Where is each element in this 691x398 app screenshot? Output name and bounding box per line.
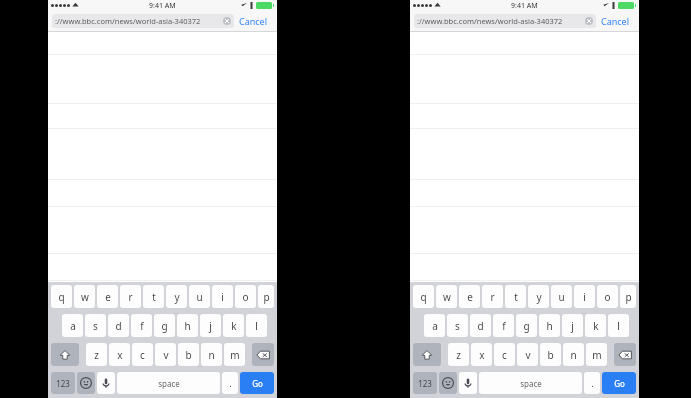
staticText: x (479, 348, 485, 362)
staticText: Go (614, 378, 625, 389)
staticText: 123 (418, 378, 432, 389)
button[interactable]: Clear text (585, 17, 593, 25)
button[interactable]: . (222, 372, 238, 394)
button[interactable]: y (166, 285, 187, 308)
button[interactable]: Emoji (439, 372, 457, 394)
staticText: t (152, 290, 156, 304)
button[interactable]: v (517, 343, 538, 366)
button[interactable]: Backspace (252, 343, 274, 366)
button[interactable]: c (132, 343, 153, 366)
button[interactable]: i (212, 285, 233, 308)
button[interactable]: ://www.bbc.com/news/world-asia-340372 (52, 14, 234, 28)
button[interactable]: f (493, 314, 514, 337)
staticText: ://www.bbc.com/news/world-asia-340372 (55, 16, 223, 26)
staticText: 9:41 AM (149, 1, 176, 11)
staticText: z (94, 348, 99, 362)
button[interactable]: p (258, 285, 274, 308)
button[interactable]: x (109, 343, 130, 366)
button[interactable]: i (574, 285, 595, 308)
staticText: c (140, 348, 145, 362)
button[interactable]: r (120, 285, 141, 308)
button[interactable]: a (62, 314, 83, 337)
button[interactable]: w (436, 285, 457, 308)
button[interactable]: Cancel (234, 13, 273, 29)
button[interactable]: Shift (51, 343, 79, 366)
button[interactable]: c (494, 343, 515, 366)
button[interactable]: g (516, 314, 537, 337)
button[interactable]: Cancel (596, 13, 635, 29)
button[interactable]: q (51, 285, 72, 308)
button[interactable]: n (563, 343, 584, 366)
staticText: m (230, 348, 240, 362)
button[interactable]: Dictate (97, 372, 115, 394)
button[interactable]: d (108, 314, 129, 337)
button[interactable]: u (189, 285, 210, 308)
button[interactable]: Go (240, 372, 274, 394)
button[interactable]: b (540, 343, 561, 366)
button[interactable]: k (585, 314, 606, 337)
button[interactable]: j (200, 314, 221, 337)
staticText: g (523, 319, 530, 333)
staticText: space (520, 378, 542, 389)
button[interactable]: d (470, 314, 491, 337)
button[interactable]: space (479, 372, 582, 394)
staticText: h (546, 319, 553, 333)
button[interactable]: e (97, 285, 118, 308)
button[interactable]: q (413, 285, 434, 308)
staticText: c (502, 348, 507, 362)
staticText: ://www.bbc.com/news/world-asia-340372 (417, 16, 585, 26)
button[interactable]: a (424, 314, 445, 337)
staticText: h (184, 319, 191, 333)
button[interactable]: w (74, 285, 95, 308)
button[interactable]: y (528, 285, 549, 308)
button[interactable]: Shift (413, 343, 441, 366)
button[interactable]: f (131, 314, 152, 337)
button[interactable]: g (154, 314, 175, 337)
button[interactable]: h (177, 314, 198, 337)
button[interactable]: x (471, 343, 492, 366)
button[interactable]: u (551, 285, 572, 308)
button[interactable]: Backspace (614, 343, 636, 366)
button[interactable]: h (539, 314, 560, 337)
button[interactable]: s (447, 314, 468, 337)
staticText: p (625, 290, 632, 304)
button[interactable]: l (608, 314, 629, 337)
button[interactable]: z (86, 343, 107, 366)
button[interactable]: m (224, 343, 245, 366)
button[interactable]: t (143, 285, 164, 308)
button[interactable]: Emoji (77, 372, 95, 394)
button[interactable]: z (448, 343, 469, 366)
button[interactable]: Go (602, 372, 636, 394)
button[interactable]: j (562, 314, 583, 337)
button[interactable]: o (235, 285, 256, 308)
button[interactable]: ://www.bbc.com/news/world-asia-340372 (414, 14, 596, 28)
staticText: e (467, 290, 473, 304)
staticText: d (115, 319, 122, 333)
button[interactable]: Clear text (223, 17, 231, 25)
staticText: 123 (56, 378, 70, 389)
button[interactable]: b (178, 343, 199, 366)
staticText: . (591, 377, 594, 389)
staticText: v (163, 348, 169, 362)
staticText: Cancel (239, 15, 268, 27)
staticText: e (105, 290, 111, 304)
button[interactable]: e (459, 285, 480, 308)
button[interactable]: Dictate (459, 372, 477, 394)
staticText: a (70, 319, 76, 333)
staticText: l (617, 319, 620, 333)
staticText: n (570, 348, 577, 362)
button[interactable]: s (85, 314, 106, 337)
button[interactable]: r (482, 285, 503, 308)
button[interactable]: o (597, 285, 618, 308)
button[interactable]: space (117, 372, 220, 394)
button[interactable]: . (584, 372, 600, 394)
button[interactable]: l (246, 314, 267, 337)
button[interactable]: p (620, 285, 636, 308)
button[interactable]: 123 (51, 372, 75, 394)
button[interactable]: t (505, 285, 526, 308)
button[interactable]: k (223, 314, 244, 337)
button[interactable]: v (155, 343, 176, 366)
button[interactable]: m (586, 343, 607, 366)
button[interactable]: n (201, 343, 222, 366)
button[interactable]: 123 (413, 372, 437, 394)
